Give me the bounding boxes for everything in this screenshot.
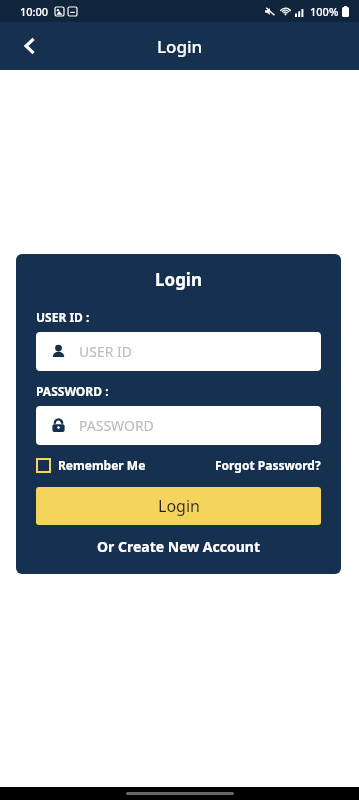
button[interactable]: Login [36, 487, 321, 525]
button[interactable]: Back [8, 24, 52, 68]
staticText: Login [36, 268, 321, 291]
button[interactable]: Remember Me [36, 457, 146, 473]
button[interactable]: Forgot Password? [215, 457, 321, 473]
staticText: Remember Me [58, 457, 146, 473]
button[interactable]: USER ID [36, 332, 321, 371]
staticText: PASSWORD : [36, 383, 109, 399]
button[interactable]: PASSWORD [36, 406, 321, 445]
staticText: 100% [310, 4, 339, 19]
staticText: 10:00 [20, 4, 49, 19]
button[interactable]: Or Create New Account [36, 537, 321, 556]
staticText: PASSWORD [79, 416, 154, 435]
staticText: USER ID [79, 342, 133, 361]
staticText: Login [157, 35, 203, 58]
staticText: Login [158, 495, 200, 517]
staticText: USER ID : [36, 309, 90, 325]
